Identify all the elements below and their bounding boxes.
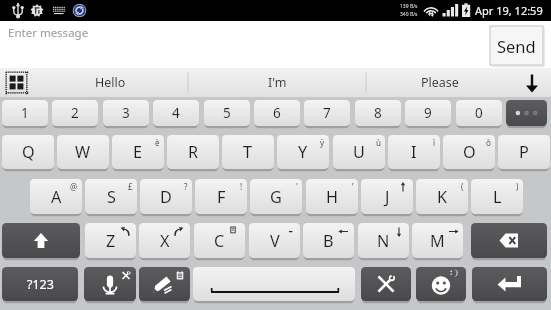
button[interactable]: 4 <box>153 100 199 126</box>
button[interactable]: Enter <box>472 267 547 301</box>
button[interactable]: 6 <box>254 100 300 126</box>
button[interactable]: S <box>85 179 137 214</box>
button[interactable]: Symbols <box>2 267 78 301</box>
button[interactable]: Space <box>193 267 355 301</box>
staticText: ’ <box>352 181 354 192</box>
button[interactable]: More keyboards <box>506 100 547 126</box>
button[interactable]: U <box>333 135 385 169</box>
staticText: 3 <box>122 104 130 122</box>
button[interactable]: I'm <box>189 68 366 97</box>
staticText: 4 <box>172 104 180 122</box>
button[interactable]: R <box>167 135 219 169</box>
staticText: W <box>75 141 91 163</box>
button[interactable]: J <box>361 179 413 214</box>
staticText: 9 <box>424 104 432 122</box>
staticText: ! <box>240 181 243 192</box>
staticText: L <box>493 186 502 208</box>
staticText: Enter message <box>8 25 89 41</box>
button[interactable]: Y <box>277 135 329 169</box>
staticText: è <box>155 137 160 148</box>
staticText: D <box>160 186 172 208</box>
staticText: ù <box>376 137 381 148</box>
button[interactable]: A <box>30 179 82 214</box>
button[interactable]: M <box>412 223 463 258</box>
button[interactable]: Please <box>367 68 512 97</box>
staticText: ? <box>184 181 188 192</box>
staticText: K <box>437 186 448 208</box>
button[interactable]: 8 <box>355 100 401 126</box>
staticText: Please <box>421 74 459 91</box>
button[interactable]: G <box>250 179 302 214</box>
staticText: S <box>107 186 116 208</box>
staticText: ) <box>516 181 519 192</box>
staticText: Z <box>106 230 116 252</box>
staticText: 0 <box>475 104 483 122</box>
staticText: 6 <box>273 104 281 122</box>
button[interactable]: 9 <box>405 100 451 126</box>
button[interactable]: V <box>249 223 300 258</box>
button[interactable]: 1 <box>2 100 48 126</box>
button[interactable]: Send <box>490 26 543 65</box>
button[interactable]: I <box>388 135 440 169</box>
button[interactable]: Hide keyboard <box>513 68 551 97</box>
staticText: 340 B/s <box>400 11 418 18</box>
button[interactable]: Handwriting <box>139 267 190 301</box>
staticText: A <box>51 186 62 208</box>
button[interactable]: Voice input <box>84 267 136 301</box>
button[interactable]: W <box>57 135 109 169</box>
button[interactable]: Hello <box>33 68 188 97</box>
staticText: N <box>377 230 390 252</box>
staticText: U <box>353 141 365 163</box>
button[interactable]: Shift <box>2 223 80 258</box>
button[interactable]: X <box>139 223 190 258</box>
staticText: ò <box>486 137 491 148</box>
staticText: J <box>385 186 390 208</box>
staticText: ' <box>296 181 298 192</box>
button[interactable]: Q <box>2 135 54 169</box>
staticText: T <box>243 141 253 163</box>
button[interactable]: F <box>195 179 247 214</box>
button[interactable]: T <box>222 135 274 169</box>
button[interactable]: 3 <box>103 100 149 126</box>
staticText: 5 <box>223 104 231 122</box>
button[interactable]: Backspace <box>471 223 547 258</box>
button[interactable]: Settings <box>361 267 411 301</box>
staticText: 8 <box>374 104 382 122</box>
staticText: Y <box>298 141 308 163</box>
button[interactable]: C <box>194 223 245 258</box>
staticText: I <box>411 141 417 163</box>
staticText: P <box>519 141 529 163</box>
button[interactable]: 0 <box>456 100 502 126</box>
staticText: R <box>188 141 199 163</box>
staticText: Hello <box>95 74 126 91</box>
button[interactable]: E <box>112 135 164 169</box>
button[interactable]: 7 <box>304 100 350 126</box>
staticText: X <box>160 230 170 252</box>
staticText: Q <box>22 141 35 163</box>
button[interactable]: H <box>306 179 358 214</box>
button[interactable]: N <box>358 223 409 258</box>
button[interactable]: K <box>416 179 468 214</box>
staticText: £ <box>128 181 133 192</box>
staticText: E <box>133 141 143 163</box>
button[interactable]: O <box>443 135 495 169</box>
button[interactable]: P <box>498 135 550 169</box>
staticText: 139 B/s <box>400 3 418 10</box>
button[interactable]: 5 <box>204 100 250 126</box>
staticText: ì <box>433 137 436 148</box>
button[interactable]: Emoji <box>416 267 466 301</box>
button[interactable]: 2 <box>52 100 98 126</box>
staticText: O <box>463 141 476 163</box>
staticText: ( <box>461 181 464 192</box>
button[interactable]: D <box>140 179 192 214</box>
button[interactable]: L <box>471 179 523 214</box>
staticText: I'm <box>268 74 287 91</box>
staticText: 2 <box>71 104 79 122</box>
button[interactable]: Z <box>85 223 136 258</box>
staticText: V <box>270 230 280 252</box>
staticText: ?123 <box>27 276 54 293</box>
button[interactable]: Keyboard layout <box>5 71 28 94</box>
button[interactable]: B <box>303 223 354 258</box>
staticText: H <box>326 186 338 208</box>
staticText: G <box>270 186 282 208</box>
